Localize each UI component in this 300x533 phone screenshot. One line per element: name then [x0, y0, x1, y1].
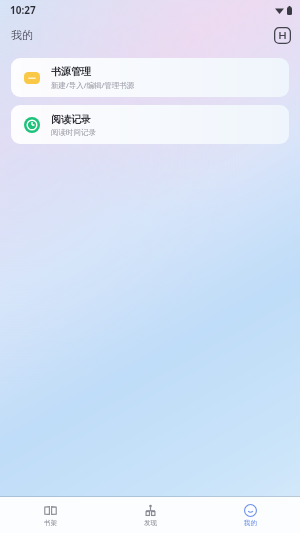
staticText: 阅读时间记录: [51, 128, 96, 137]
staticText: 10:27: [10, 3, 36, 17]
button[interactable]: 书源管理: [11, 58, 289, 97]
staticText: 阅读记录: [51, 113, 91, 126]
staticText: 我的: [11, 28, 33, 42]
staticText: 我的: [244, 519, 257, 527]
staticText: 新建/导入/编辑/管理书源: [51, 80, 135, 90]
button[interactable]: 发现: [100, 497, 200, 533]
button[interactable]: 阅读记录: [11, 105, 289, 144]
button[interactable]: Theme: [274, 27, 291, 44]
button[interactable]: 我的: [200, 497, 300, 533]
staticText: 发现: [144, 519, 157, 527]
staticText: 书架: [44, 519, 57, 527]
button[interactable]: 书架: [0, 497, 100, 533]
staticText: 书源管理: [51, 65, 91, 78]
